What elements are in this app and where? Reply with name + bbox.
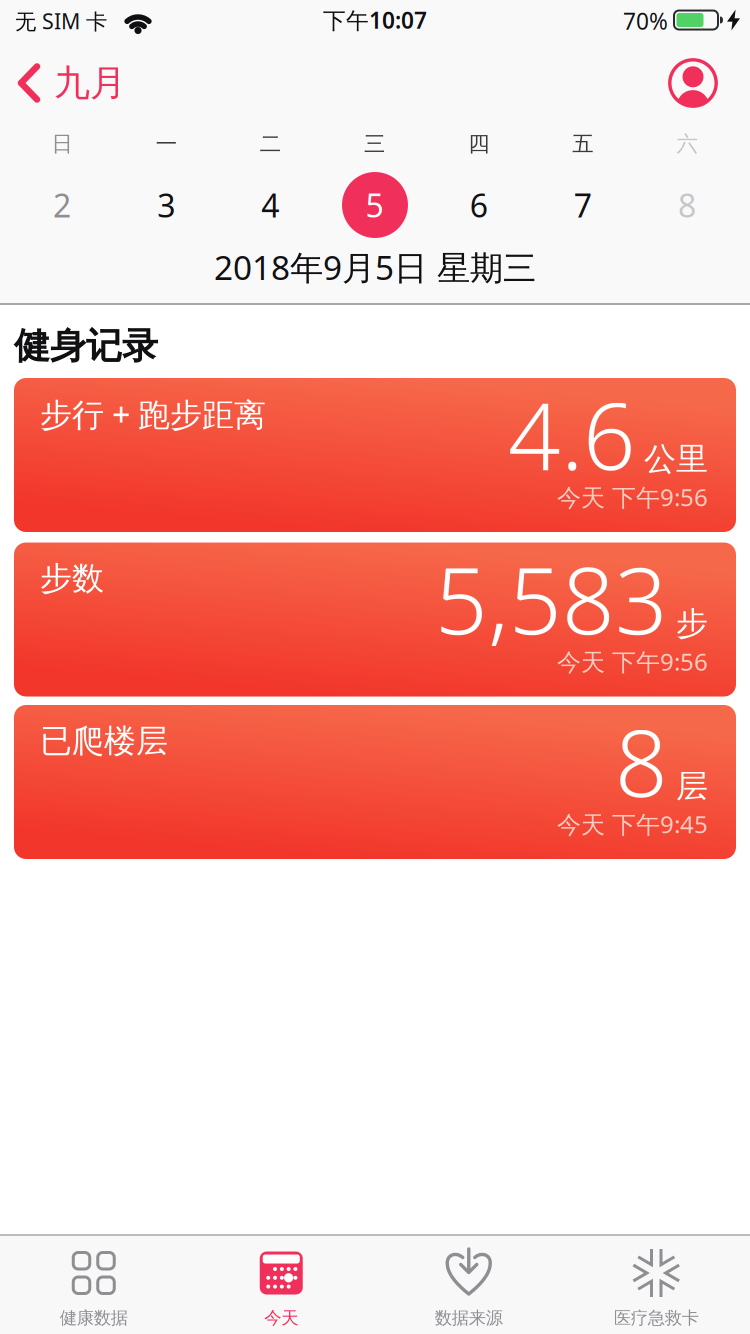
staticText: 三 — [364, 131, 385, 157]
staticText: 5 — [365, 184, 383, 226]
staticText: 7 — [574, 184, 592, 226]
staticText: 4 — [261, 184, 279, 226]
button[interactable]: 4 — [220, 170, 320, 240]
staticText: 公里 — [644, 439, 708, 479]
button[interactable]: 8 — [637, 170, 737, 240]
staticText: 8 — [615, 700, 668, 822]
staticText: 今天 下午9:56 — [557, 481, 708, 513]
staticText: 健康数据 — [60, 1307, 128, 1329]
button[interactable]: 医疗急救卡 — [563, 1235, 750, 1334]
staticText: 六 — [676, 131, 697, 157]
staticText: 8 — [678, 184, 696, 226]
staticText: 4.6 — [508, 373, 636, 495]
button[interactable]: 5 — [324, 170, 424, 240]
staticText: 5,583 — [435, 537, 668, 660]
staticText: 二 — [260, 131, 281, 157]
button[interactable]: 健康数据 — [0, 1235, 187, 1334]
staticText: 今天 — [264, 1307, 298, 1329]
staticText: 步 — [676, 604, 708, 643]
staticText: 健身记录 — [14, 324, 158, 368]
button[interactable]: 2 — [12, 170, 112, 240]
staticText: 日 — [51, 131, 72, 157]
staticText: 下午10:07 — [323, 5, 427, 35]
staticText: 已爬楼层 — [40, 721, 168, 761]
staticText: 步行 + 跑步距离 — [40, 393, 266, 435]
staticText: 五 — [572, 131, 593, 157]
staticText: 70% — [623, 6, 668, 36]
button[interactable]: 已爬楼层 — [14, 705, 736, 859]
staticText: 四 — [468, 131, 489, 157]
staticText: 医疗急救卡 — [614, 1307, 699, 1329]
staticText: 一 — [156, 131, 177, 157]
button[interactable]: 步数 — [14, 542, 736, 696]
staticText: 今天 下午9:56 — [557, 646, 708, 677]
staticText: 6 — [470, 184, 488, 226]
staticText: 层 — [676, 766, 708, 806]
button[interactable]: 3 — [116, 170, 216, 240]
staticText: 数据来源 — [435, 1307, 503, 1329]
staticText: 2018年9月5日 星期三 — [214, 245, 536, 289]
staticText: 3 — [157, 184, 175, 226]
button[interactable]: 7 — [533, 170, 633, 240]
button[interactable] — [668, 58, 718, 108]
button[interactable]: 数据来源 — [375, 1235, 562, 1334]
staticText: 无 SIM 卡 — [15, 7, 107, 35]
staticText: 今天 下午9:45 — [557, 808, 708, 840]
button[interactable]: 步行 + 跑步距离 — [14, 378, 736, 532]
staticText: 九月 — [54, 61, 126, 105]
staticText: 步数 — [40, 559, 104, 598]
button[interactable]: 今天 — [188, 1235, 375, 1334]
button[interactable]: 6 — [429, 170, 529, 240]
button[interactable]: 九月 — [18, 56, 188, 110]
staticText: 2 — [53, 184, 71, 226]
